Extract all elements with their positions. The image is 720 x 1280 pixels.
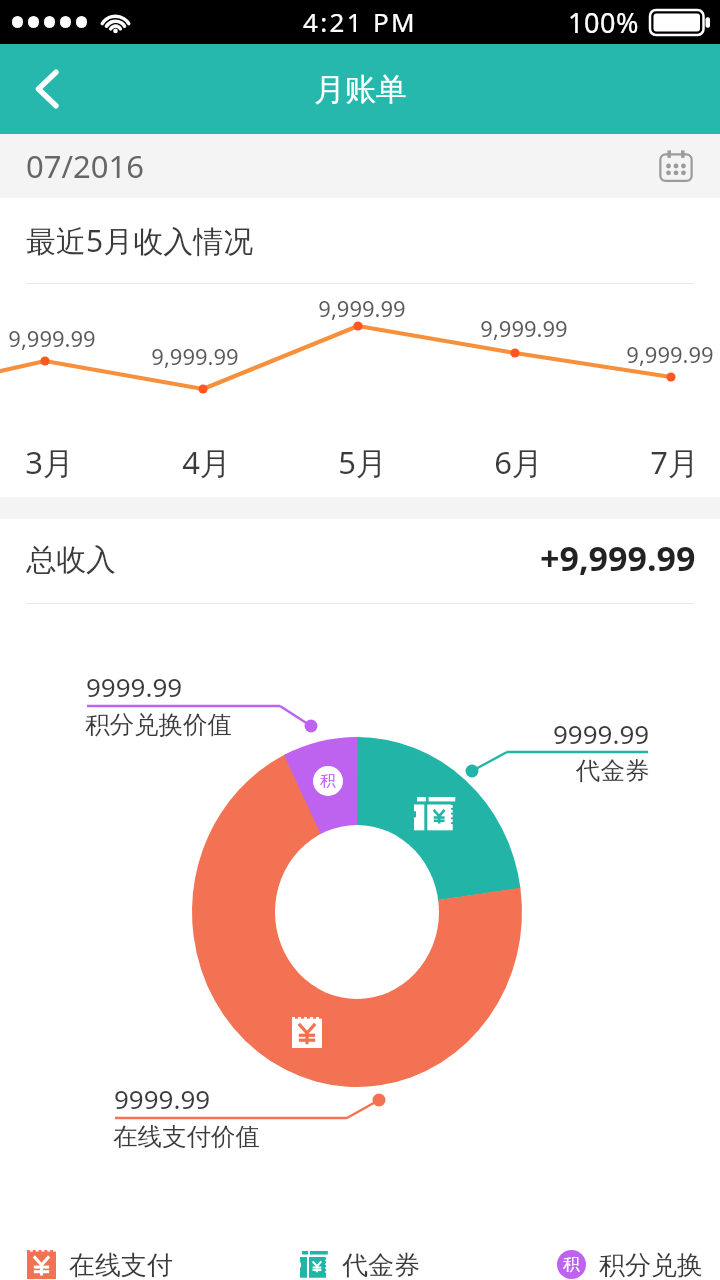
staticText: +9,999.99	[540, 535, 696, 581]
staticText: 代金券	[342, 1249, 420, 1279]
staticText: 9,999.99	[151, 341, 239, 371]
button[interactable]: Back	[0, 44, 96, 134]
staticText: 4:21 PM	[303, 4, 418, 39]
staticText: 6月	[494, 441, 543, 483]
staticText: 9,999.99	[626, 339, 714, 369]
staticText: 9999.99	[553, 716, 650, 751]
staticText: 9,999.99	[318, 293, 406, 323]
staticText: 7月	[650, 441, 699, 483]
staticText: 积分兑换	[599, 1249, 703, 1279]
staticText: 9,999.99	[8, 323, 96, 353]
button[interactable]: 积	[557, 1249, 703, 1279]
staticText: 积	[320, 771, 336, 791]
staticText: 积	[563, 1254, 580, 1275]
staticText: 5月	[338, 441, 387, 483]
button[interactable]: 总收入	[0, 519, 720, 604]
button[interactable]: 代金券	[300, 1249, 420, 1279]
staticText: 代金券	[576, 755, 650, 786]
staticText: 100%	[568, 4, 639, 41]
staticText: 月账单	[314, 70, 407, 109]
staticText: 积分兑换价值	[85, 709, 232, 740]
staticText: 3月	[25, 441, 74, 483]
staticText: 9999.99	[114, 1081, 211, 1116]
button[interactable]: 07/2016	[0, 134, 720, 198]
staticText: 最近5月收入情况	[26, 220, 254, 261]
staticText: 总收入	[26, 541, 116, 579]
staticText: 07/2016	[26, 145, 144, 187]
staticText: 4月	[182, 441, 231, 483]
staticText: 9,999.99	[480, 313, 568, 343]
other: Pick month	[656, 146, 696, 186]
staticText: 在线支付价值	[113, 1121, 260, 1152]
button[interactable]: 在线支付	[27, 1249, 173, 1279]
staticText: 在线支付	[69, 1249, 173, 1279]
staticText: 9999.99	[86, 669, 183, 704]
